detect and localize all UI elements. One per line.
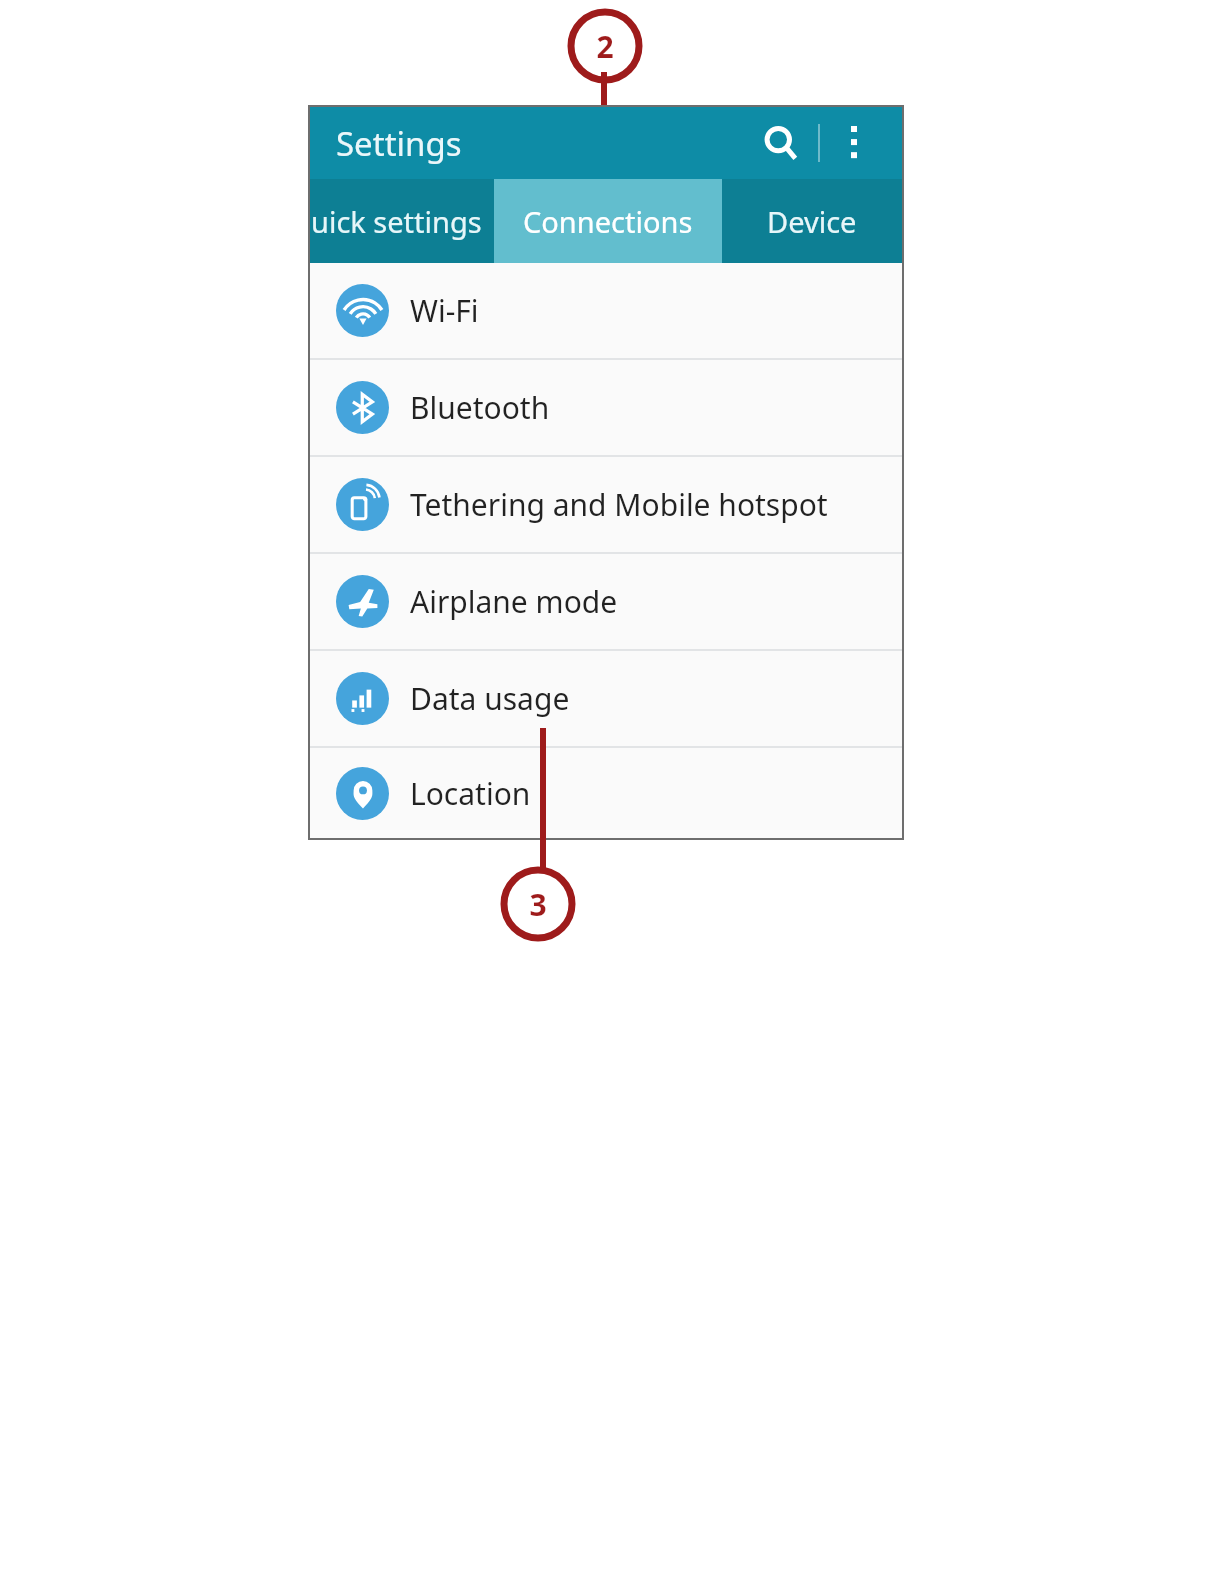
button[interactable]: Bluetooth [310, 360, 902, 455]
staticText: Location [410, 773, 531, 814]
staticText: uick settings [311, 202, 482, 241]
staticText: Data usage [410, 678, 570, 719]
button[interactable]: Search [750, 112, 812, 174]
staticText: Settings [336, 121, 462, 166]
button[interactable]: Connections [494, 179, 722, 263]
staticText: Connections [523, 202, 693, 241]
staticText: Tethering and Mobile hotspot [410, 484, 828, 525]
button[interactable]: More options [826, 115, 882, 171]
button[interactable]: Wi-Fi [310, 263, 902, 358]
button[interactable]: Location [310, 748, 902, 838]
staticText: 2 [596, 26, 614, 67]
button[interactable]: Airplane mode [310, 554, 902, 649]
staticText: Device [767, 202, 857, 241]
button[interactable]: Tethering and Mobile hotspot [310, 457, 902, 552]
button[interactable]: Device [722, 179, 902, 263]
staticText: Wi-Fi [410, 290, 479, 331]
button[interactable]: uick settings [310, 179, 494, 263]
staticText: Bluetooth [410, 387, 550, 428]
staticText: 3 [529, 884, 547, 925]
staticText: Airplane mode [410, 581, 618, 622]
button[interactable]: Data usage [310, 651, 902, 746]
